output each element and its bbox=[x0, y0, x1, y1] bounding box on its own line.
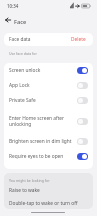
staticText: Brighten screen in dim light bbox=[9, 138, 72, 145]
button[interactable]: Screen unlock bbox=[4, 63, 93, 78]
button[interactable]: Brighten screen in dim light bbox=[4, 134, 93, 149]
staticText: Face bbox=[14, 18, 27, 26]
button[interactable]: Raise to wake bbox=[4, 183, 93, 197]
button[interactable]: Back bbox=[2, 14, 13, 25]
staticText: 10:34 bbox=[7, 3, 19, 9]
button[interactable]: Face data bbox=[4, 33, 93, 46]
button[interactable]: Enter Home screen after unlocking bbox=[4, 108, 93, 134]
staticText: Require eyes to be open bbox=[9, 153, 64, 160]
staticText: Screen unlock bbox=[9, 67, 41, 74]
button[interactable]: Private Safe bbox=[4, 93, 93, 108]
staticText: Raise to wake bbox=[9, 187, 40, 194]
staticText: Enter Home screen after unlocking bbox=[9, 115, 74, 127]
button[interactable]: App Lock bbox=[4, 78, 93, 93]
staticText: App Lock bbox=[9, 82, 30, 89]
staticText: Face data bbox=[9, 36, 31, 43]
button[interactable]: Require eyes to be open bbox=[4, 149, 93, 164]
staticText: Delete bbox=[71, 36, 86, 43]
staticText: You might be looking for bbox=[9, 178, 50, 183]
staticText: Use face data for bbox=[9, 51, 37, 56]
button[interactable]: Double-tap to wake or turn off screen bbox=[4, 197, 93, 209]
staticText: Double-tap to wake or turn off screen bbox=[9, 200, 88, 207]
staticText: Private Safe bbox=[9, 97, 36, 104]
